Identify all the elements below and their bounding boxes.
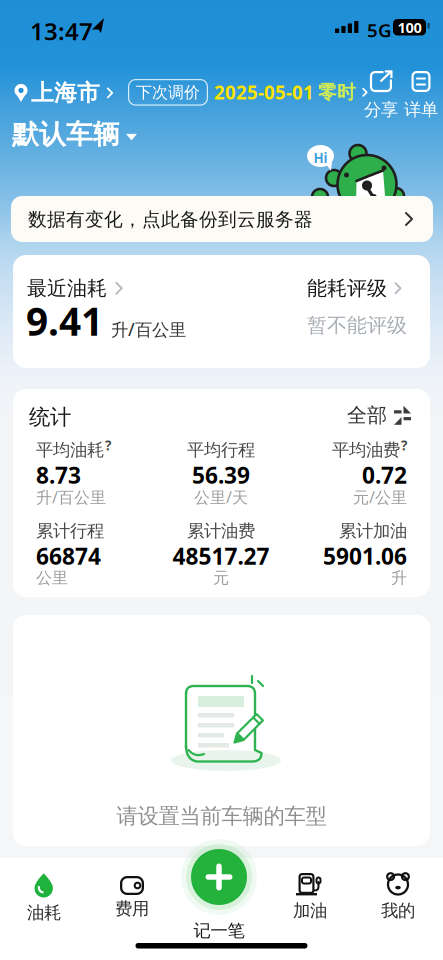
staticText: 平均行程	[187, 439, 255, 461]
staticText: 统计	[29, 404, 71, 430]
staticText: 2025-05-01	[214, 80, 314, 105]
staticText: 零时	[318, 81, 356, 104]
staticText: 费用	[115, 898, 149, 919]
staticText: 5901.06	[323, 541, 407, 571]
button[interactable]: 我的	[374, 873, 422, 921]
staticText: 0.72	[362, 460, 407, 490]
staticText: ?	[105, 436, 111, 454]
staticText: 全部	[347, 403, 387, 428]
staticText: 13:47	[30, 15, 93, 47]
staticText: 数据有变化，点此备份到云服务器	[28, 208, 313, 231]
staticText: 记一笔	[193, 920, 244, 941]
staticText: 详单	[404, 99, 438, 120]
staticText: ?	[401, 436, 407, 454]
staticText: Hi	[313, 149, 327, 167]
staticText: 分享	[364, 99, 398, 120]
staticText: 油耗	[27, 902, 61, 923]
button[interactable]: 能耗评级	[307, 276, 403, 301]
staticText: 升/百公里	[36, 486, 106, 508]
staticText: 平均油耗	[36, 439, 104, 461]
staticText: 100	[397, 17, 421, 37]
staticText: 平均油费	[332, 439, 400, 461]
staticText: 默认车辆	[12, 118, 120, 151]
button[interactable]: 数据有变化，点此备份到云服务器	[11, 196, 443, 960]
staticText: 公里/天	[194, 486, 248, 508]
staticText: 暂不能评级	[307, 313, 407, 338]
staticText: 9.41	[26, 295, 103, 346]
button[interactable]: 加油	[286, 873, 334, 921]
button[interactable]: 分享	[364, 71, 398, 120]
staticText: 累计行程	[36, 520, 104, 542]
staticText: 元	[213, 568, 229, 588]
staticText: 请设置当前车辆的车型	[116, 803, 326, 829]
staticText: 累计加油	[339, 520, 407, 542]
button[interactable]: 上海市	[14, 79, 117, 107]
staticText: 56.39	[192, 460, 250, 490]
staticText: 上海市	[31, 79, 100, 107]
staticText: 66874	[36, 541, 101, 571]
staticText: 公里	[36, 568, 68, 588]
button[interactable]: 默认车辆	[12, 118, 137, 151]
staticText: 48517.27	[172, 541, 269, 571]
button[interactable]: 记一笔	[191, 849, 247, 941]
staticText: 升	[391, 568, 407, 588]
staticText: 累计油费	[187, 520, 255, 542]
button[interactable]: 油耗	[20, 873, 68, 923]
button[interactable]: 下次调价	[128, 79, 368, 106]
staticText: 最近油耗	[27, 276, 107, 301]
button[interactable]: 费用	[108, 873, 156, 919]
staticText: 5G	[367, 17, 392, 42]
button[interactable]: 全部	[347, 403, 411, 428]
staticText: 我的	[381, 900, 415, 921]
staticText: 元/公里	[353, 486, 407, 508]
button[interactable]: 详单	[404, 71, 438, 120]
staticText: 8.73	[36, 460, 81, 490]
button[interactable]: 最近油耗	[27, 276, 124, 301]
staticText: 下次调价	[136, 82, 200, 102]
staticText: 能耗评级	[307, 276, 387, 301]
staticText: 升/百公里	[111, 318, 186, 341]
staticText: 加油	[293, 900, 327, 921]
